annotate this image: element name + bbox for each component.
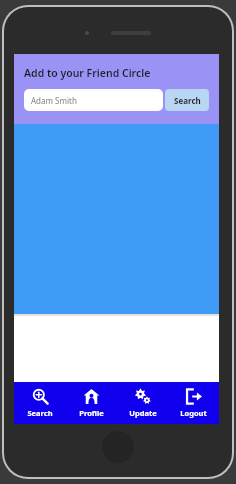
button[interactable]: Adam Smith: [24, 89, 163, 111]
button[interactable]: Logout: [168, 382, 219, 424]
button[interactable]: Update: [117, 382, 168, 424]
button[interactable]: Search: [14, 382, 66, 424]
staticText: Update: [129, 408, 157, 418]
staticText: Logout: [180, 408, 207, 418]
button[interactable]: Profile: [66, 382, 117, 424]
staticText: Adam Smith: [31, 95, 77, 106]
staticText: Add to your Friend Circle: [24, 66, 151, 80]
button[interactable]: Search: [165, 89, 209, 111]
staticText: Profile: [79, 408, 104, 418]
staticText: Search: [27, 408, 53, 418]
staticText: Search: [174, 95, 201, 106]
